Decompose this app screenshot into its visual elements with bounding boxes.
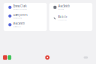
button[interactable]: Emma Clark bbox=[4, 3, 47, 12]
button[interactable]: Liam Jones bbox=[4, 12, 47, 20]
staticText: Ava Smith bbox=[13, 22, 25, 25]
staticText: Ava Smith bbox=[58, 4, 70, 8]
staticText: Call me back bbox=[13, 26, 21, 28]
staticText: Sent you a file bbox=[13, 17, 22, 19]
button[interactable]: More options bbox=[84, 56, 88, 59]
button[interactable]: Ava Smith bbox=[4, 20, 47, 29]
staticText: Liam Jones bbox=[13, 13, 27, 17]
staticText: Emma Clark bbox=[13, 4, 26, 8]
staticText: +1 555 0199 bbox=[58, 19, 67, 21]
staticText: Mobile bbox=[58, 15, 68, 19]
staticText: Design sync at 10:00 bbox=[13, 8, 27, 10]
button[interactable]: End call bbox=[45, 55, 50, 60]
button[interactable]: Mobile bbox=[49, 16, 92, 21]
button[interactable]: Decline call bbox=[3, 55, 7, 60]
button[interactable]: Accept call bbox=[8, 55, 11, 60]
staticText: Recents bbox=[58, 8, 64, 10]
